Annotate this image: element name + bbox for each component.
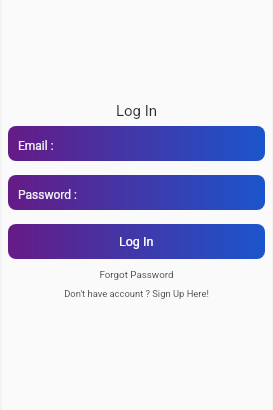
staticText: Password : (18, 188, 77, 202)
button[interactable]: Don't have account ? Sign Up Here! (0, 288, 273, 299)
button[interactable]: Log In (8, 224, 265, 259)
staticText: Log In (0, 102, 273, 120)
staticText: Log In (119, 234, 154, 249)
button[interactable]: Forgot Password (0, 269, 273, 280)
button[interactable]: Password : (8, 175, 265, 210)
staticText: Email : (18, 139, 54, 153)
button[interactable]: Email : (8, 126, 265, 161)
